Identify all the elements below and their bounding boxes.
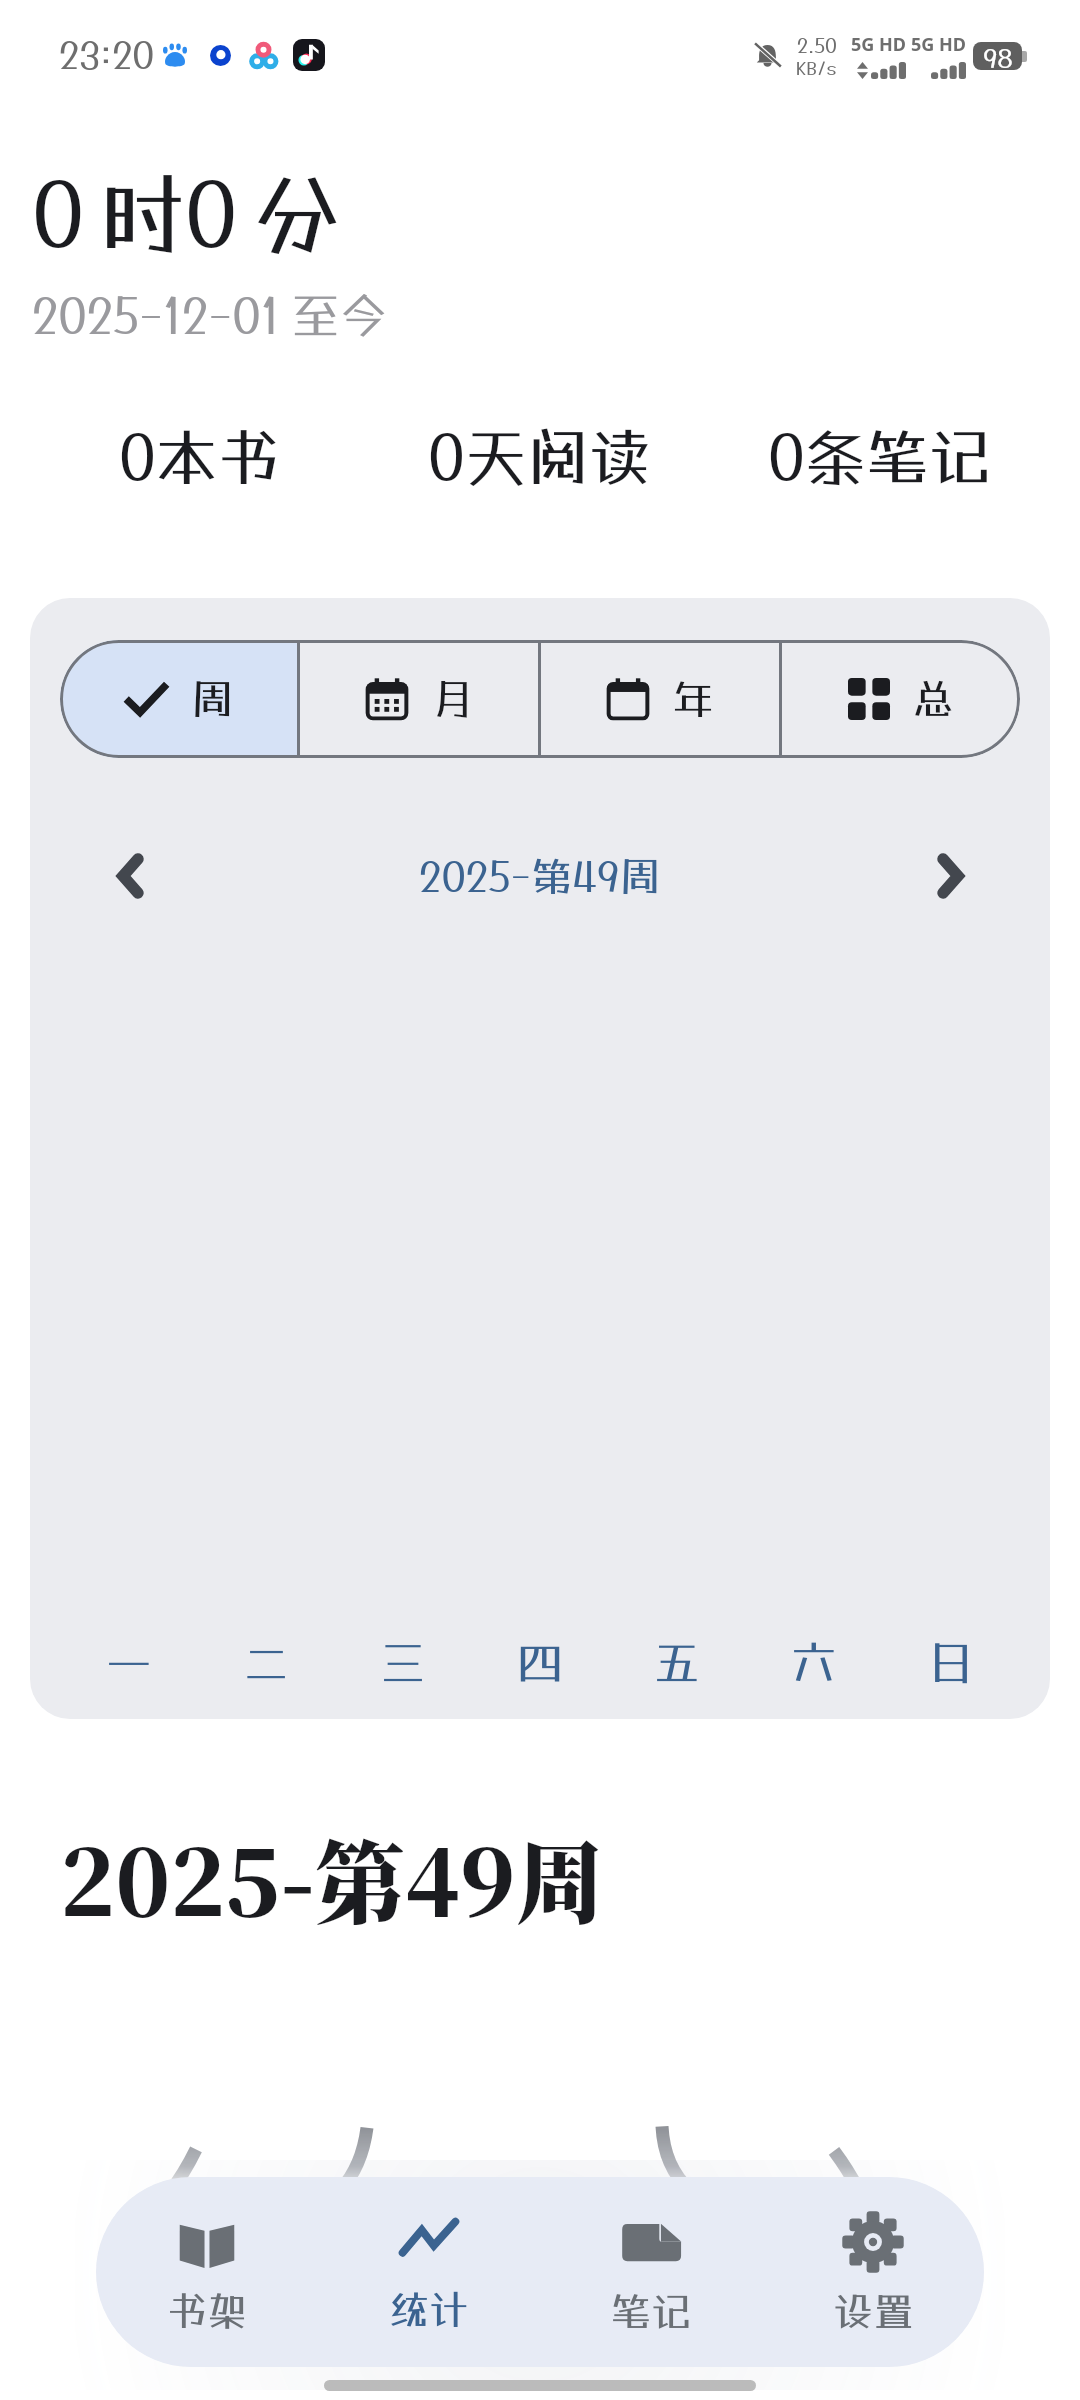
staticText: 5G HD <box>911 32 966 57</box>
staticText: 98 <box>983 42 1013 70</box>
staticText: 总 <box>912 674 955 724</box>
staticText: 三 <box>380 1635 426 1689</box>
staticText: 二 <box>243 1635 289 1689</box>
staticText: 5G HD <box>851 32 906 57</box>
staticText: 0天阅读 <box>428 420 651 493</box>
button[interactable]: 书架 <box>96 2177 318 2367</box>
button[interactable]: Next <box>915 841 985 911</box>
staticText: KB/s <box>796 57 837 78</box>
button[interactable]: 统计 <box>318 2177 540 2367</box>
staticText: 2.50 <box>797 33 837 57</box>
staticText: 2025-第49周 <box>419 852 661 900</box>
staticText: 六 <box>791 1635 837 1689</box>
staticText: 0 时0 分 <box>32 162 339 266</box>
button[interactable]: 总 <box>782 640 1020 758</box>
staticText: 0本书 <box>119 420 280 493</box>
staticText: 设置 <box>833 2288 913 2335</box>
button[interactable]: Previous <box>95 841 165 911</box>
button[interactable]: 周 <box>60 640 297 758</box>
staticText: 月 <box>431 674 474 724</box>
staticText: 一 <box>106 1635 152 1689</box>
button[interactable]: 笔记 <box>540 2177 762 2367</box>
staticText: 周 <box>191 674 234 724</box>
staticText: 统计 <box>389 2286 469 2333</box>
staticText: 五 <box>654 1635 700 1689</box>
button[interactable]: 年 <box>541 640 779 758</box>
staticText: 2025-12-01 至今 <box>32 287 388 344</box>
staticText: 四 <box>517 1635 563 1689</box>
staticText: 年 <box>672 674 715 724</box>
button[interactable]: 设置 <box>762 2177 984 2367</box>
staticText: 0条笔记 <box>768 420 991 493</box>
staticText: 书架 <box>167 2287 247 2334</box>
staticText: 日 <box>928 1635 974 1689</box>
staticText: 笔记 <box>611 2288 691 2335</box>
button[interactable]: 月 <box>300 640 538 758</box>
staticText: 2025-第49周 <box>60 1812 606 1941</box>
staticText: 23:20 <box>59 33 155 77</box>
